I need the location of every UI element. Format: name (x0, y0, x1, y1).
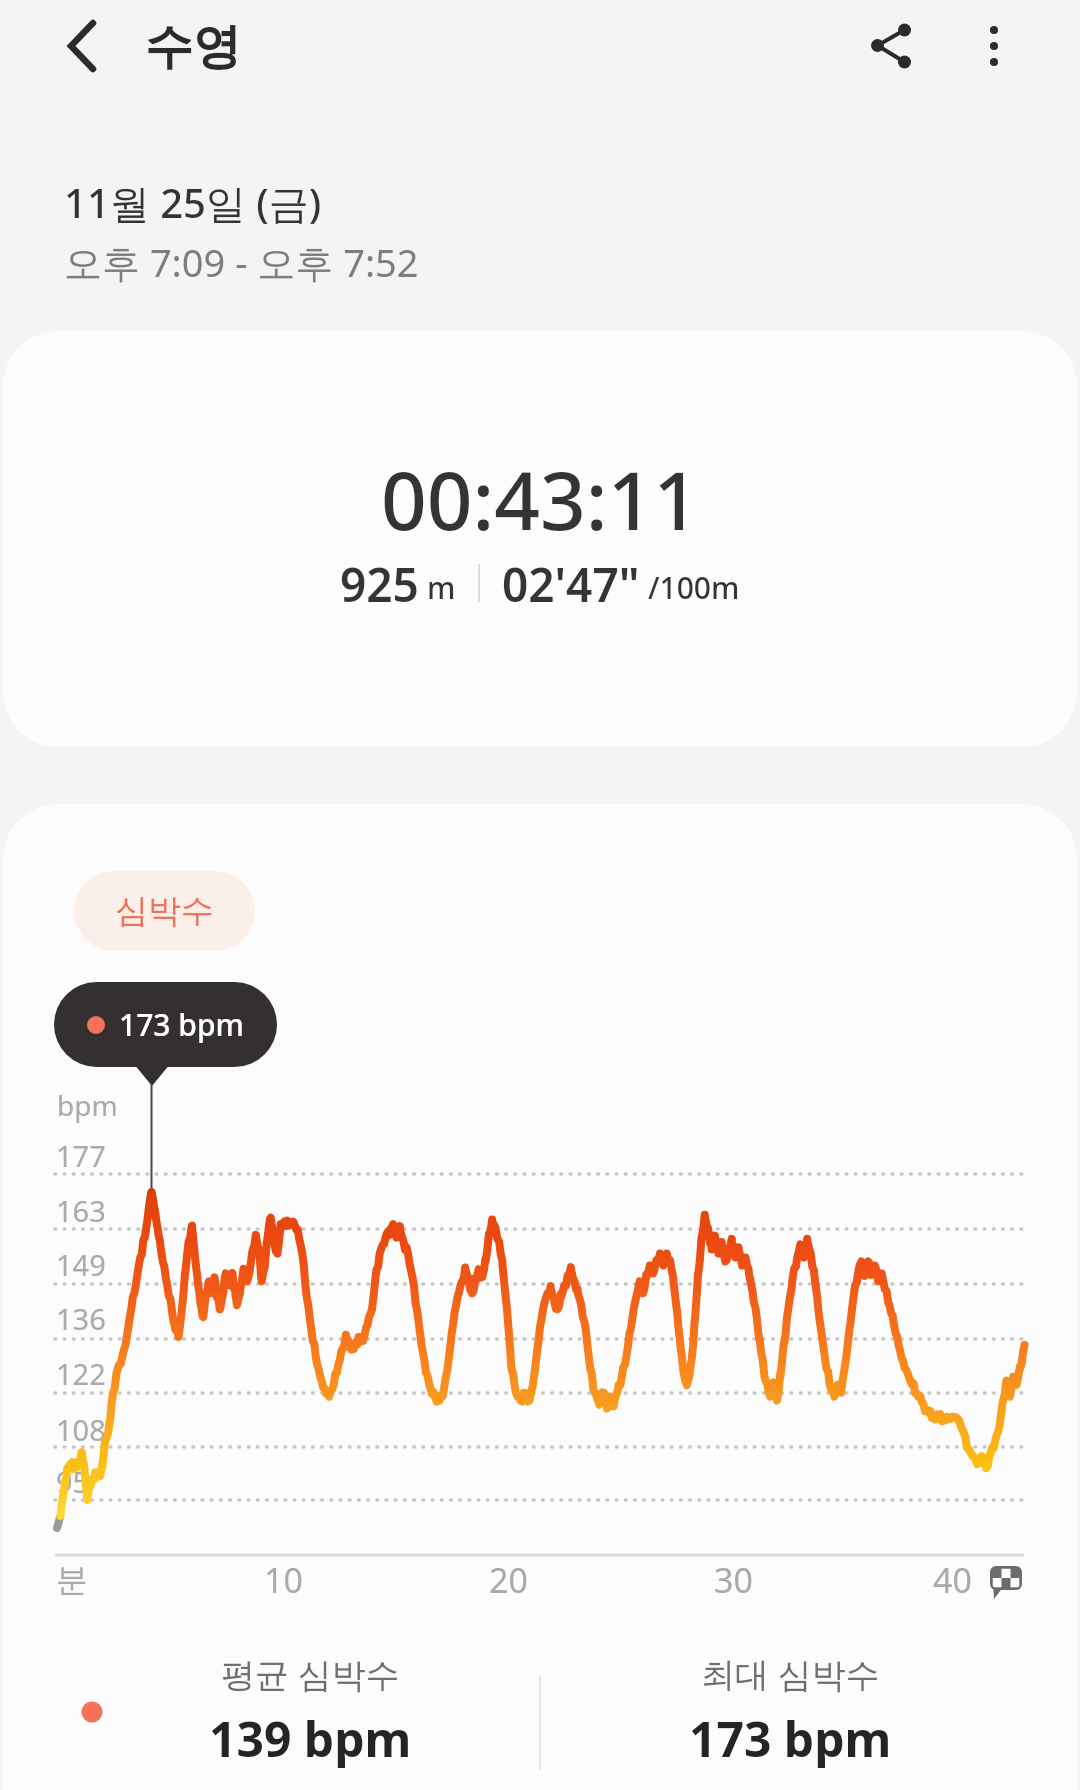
staticText: 00:43:11 (381, 444, 700, 553)
button[interactable] (44, 9, 120, 85)
staticText: 173 bpm (689, 1706, 892, 1768)
staticText: 30 (714, 1557, 753, 1603)
staticText: 122 (56, 1354, 106, 1393)
staticText: /100m (648, 567, 740, 608)
staticText: 163 (56, 1191, 106, 1230)
staticText: bpm (57, 1086, 118, 1124)
staticText: 149 (56, 1245, 106, 1284)
staticText: 10 (264, 1557, 303, 1603)
staticText: 오후 7:09 - 오후 7:52 (64, 236, 419, 288)
staticText: 173 bpm (119, 1004, 244, 1045)
staticText: 40 (933, 1557, 972, 1603)
button[interactable] (3, 331, 1077, 747)
staticText: 177 (56, 1136, 106, 1175)
staticText: 평균 심박수 (221, 1651, 400, 1697)
staticText: 108 (56, 1410, 106, 1449)
button[interactable]: 심박수 (74, 871, 255, 951)
staticText: 139 bpm (209, 1706, 412, 1768)
staticText: 분 (56, 1560, 88, 1600)
staticText: 02'47" (502, 553, 640, 613)
staticText: 최대 심박수 (701, 1651, 880, 1697)
staticText: 20 (489, 1557, 528, 1603)
staticText: 925 (340, 553, 419, 613)
staticText: 수영 (145, 17, 241, 77)
staticText: 11월 25일 (금) (64, 175, 322, 230)
staticText: 95 (56, 1462, 90, 1501)
staticText: m (427, 567, 456, 608)
staticText: 136 (56, 1299, 106, 1338)
button[interactable] (846, 1, 936, 91)
staticText: 심박수 (115, 890, 214, 932)
button[interactable] (949, 1, 1039, 91)
